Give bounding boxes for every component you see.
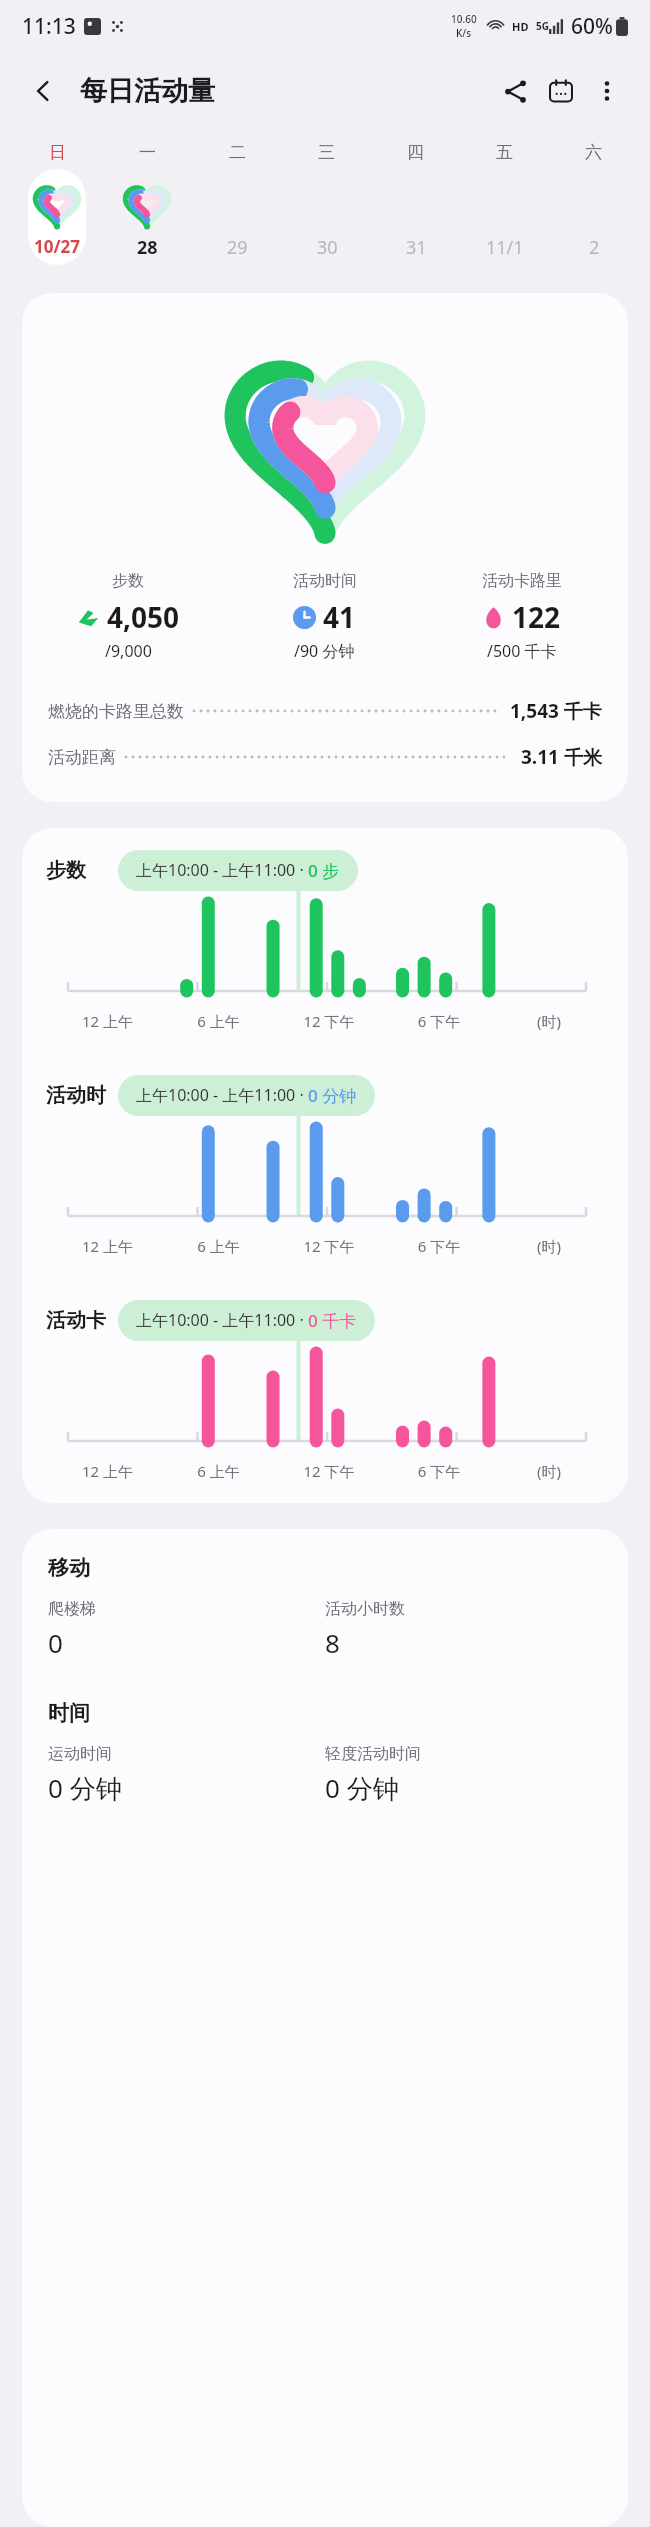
staticText: 28 — [137, 235, 158, 260]
staticText: 6 下午 — [384, 1236, 494, 1256]
staticText: 6 上午 — [163, 1461, 274, 1481]
button[interactable]: 30 — [282, 169, 371, 269]
staticText: (时) — [494, 1461, 604, 1481]
staticText: (时) — [494, 1011, 604, 1031]
staticText: 活动时间 — [293, 571, 357, 591]
staticText: 步数 — [46, 858, 86, 883]
staticText: 上午10:00 - 上午11:00 · — [136, 1084, 308, 1106]
staticText: 30 — [317, 235, 338, 260]
staticText: 11:13 — [22, 12, 76, 41]
button[interactable]: 31 — [371, 169, 460, 269]
staticText: 0 分钟 — [48, 1770, 122, 1806]
staticText: 0 — [48, 1625, 63, 1660]
staticText: 0 分钟 — [325, 1770, 399, 1806]
staticText: 31 — [406, 235, 427, 260]
staticText: 6 上午 — [163, 1236, 274, 1256]
button[interactable]: Share — [492, 68, 538, 114]
staticText: 燃烧的卡路里总数 — [48, 701, 184, 722]
staticText: 活动时 — [46, 1083, 106, 1108]
staticText: 12 上午 — [52, 1011, 163, 1031]
staticText: HD — [512, 19, 529, 34]
staticText: 0 分钟 — [308, 1084, 357, 1107]
staticText: 8 — [325, 1625, 340, 1660]
staticText: 4,050 — [107, 598, 180, 636]
staticText: 活动卡 — [46, 1308, 106, 1333]
staticText: 5G — [536, 19, 549, 33]
staticText: 1,543 千卡 — [510, 698, 602, 724]
staticText: 活动距离 — [48, 747, 116, 768]
staticText: 12 上午 — [52, 1236, 163, 1256]
staticText: 轻度活动时间 — [325, 1744, 421, 1764]
button[interactable]: 2 — [549, 169, 638, 269]
staticText: 6 下午 — [384, 1011, 494, 1031]
button[interactable]: 燃烧的卡路里总数 — [48, 688, 602, 734]
staticText: /9,000 — [105, 640, 152, 662]
button[interactable]: 29 — [192, 169, 282, 269]
staticText: 每日活动量 — [80, 74, 215, 108]
staticText: 10/27 — [34, 235, 80, 258]
staticText: 10.60 — [451, 12, 477, 26]
staticText: /90 分钟 — [294, 640, 355, 662]
button[interactable]: 10/27 — [12, 169, 102, 269]
staticText: 12 下午 — [274, 1011, 384, 1031]
staticText: 活动小时数 — [325, 1599, 405, 1619]
staticText: /500 千卡 — [487, 640, 557, 662]
staticText: 移动 — [48, 1555, 90, 1581]
staticText: 12 下午 — [274, 1236, 384, 1256]
staticText: 11/1 — [486, 235, 524, 260]
staticText: 3.11 千米 — [521, 744, 602, 770]
staticText: K/s — [456, 26, 472, 40]
staticText: 日 — [49, 142, 66, 163]
staticText: 29 — [227, 235, 248, 260]
staticText: 12 下午 — [274, 1461, 384, 1481]
staticText: 6 上午 — [163, 1011, 274, 1031]
staticText: 三 — [318, 142, 335, 163]
staticText: 2 — [589, 235, 600, 260]
button[interactable]: Calendar — [538, 68, 584, 114]
button[interactable]: 11/1 — [460, 169, 549, 269]
staticText: 122 — [512, 598, 561, 636]
staticText: 时间 — [48, 1700, 90, 1726]
button[interactable]: 28 — [102, 169, 192, 269]
staticText: 活动卡路里 — [482, 571, 562, 591]
staticText: 一 — [139, 142, 156, 163]
button[interactable]: Back — [20, 68, 66, 114]
staticText: 41 — [323, 598, 356, 636]
button[interactable]: More options — [584, 68, 630, 114]
staticText: 步数 — [112, 571, 144, 591]
staticText: 爬楼梯 — [48, 1599, 96, 1619]
staticText: 二 — [229, 142, 246, 163]
staticText: (时) — [494, 1236, 604, 1256]
staticText: 运动时间 — [48, 1744, 112, 1764]
staticText: 0 步 — [308, 859, 340, 882]
staticText: 60% — [571, 12, 613, 41]
staticText: 上午10:00 - 上午11:00 · — [136, 1309, 308, 1331]
staticText: 四 — [407, 142, 424, 163]
staticText: 五 — [496, 142, 513, 163]
staticText: 12 上午 — [52, 1461, 163, 1481]
staticText: 6 下午 — [384, 1461, 494, 1481]
staticText: 六 — [585, 142, 602, 163]
button[interactable]: 活动距离 — [48, 734, 602, 780]
staticText: 0 千卡 — [308, 1309, 357, 1332]
staticText: 上午10:00 - 上午11:00 · — [136, 859, 308, 881]
